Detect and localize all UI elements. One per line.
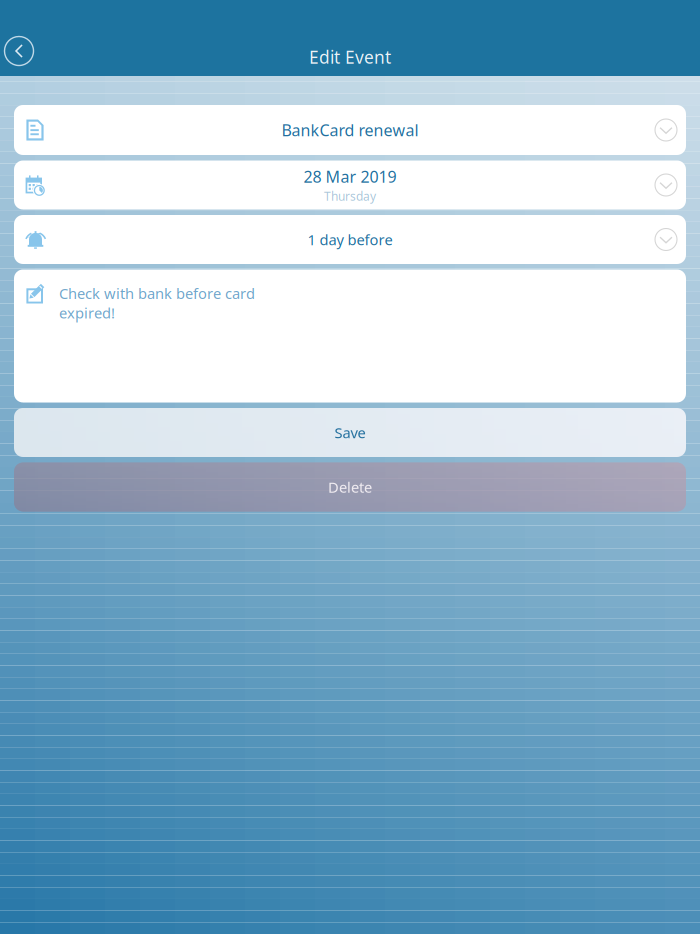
button[interactable]: Title, BankCard renewal xyxy=(14,105,686,155)
staticText: Edit Event xyxy=(309,45,391,68)
button[interactable]: Delete xyxy=(14,462,686,511)
staticText: 1 day before xyxy=(307,230,392,249)
staticText: BankCard renewal xyxy=(281,119,418,141)
button[interactable]: Save xyxy=(14,408,686,457)
button[interactable]: Reminder, 1 day before xyxy=(14,215,686,264)
staticText: 28 Mar 2019 xyxy=(303,166,396,187)
staticText: Thursday xyxy=(324,188,376,204)
button[interactable]: Note, Check with bank before card expire… xyxy=(14,269,686,402)
staticText: Check with bank before card expired! xyxy=(59,283,255,322)
button[interactable]: Back xyxy=(0,28,38,74)
button[interactable]: Date, 28 Mar 2019, Thursday xyxy=(14,160,686,209)
staticText: Delete xyxy=(328,477,372,497)
staticText: Save xyxy=(334,423,365,442)
